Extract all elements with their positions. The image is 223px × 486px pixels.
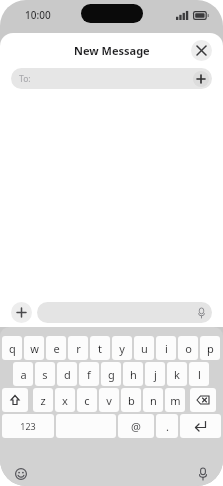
button[interactable]: l bbox=[189, 362, 209, 386]
button[interactable]: Voice input bbox=[194, 465, 211, 482]
staticText: t bbox=[98, 341, 102, 356]
button[interactable]: Shift bbox=[2, 388, 28, 412]
button[interactable]: y bbox=[112, 336, 132, 360]
staticText: g bbox=[108, 367, 115, 382]
staticText: f bbox=[87, 367, 91, 382]
staticText: i bbox=[165, 341, 168, 356]
button[interactable]: @ bbox=[118, 414, 154, 438]
staticText: v bbox=[106, 393, 112, 408]
button[interactable]: a bbox=[13, 362, 33, 386]
staticText: a bbox=[20, 367, 27, 382]
staticText: o bbox=[185, 341, 192, 356]
staticText: w bbox=[30, 341, 39, 356]
button[interactable]: n bbox=[143, 388, 163, 412]
button[interactable]: Add contact bbox=[193, 71, 209, 87]
button[interactable]: x bbox=[55, 388, 75, 412]
button[interactable]: p bbox=[200, 336, 220, 360]
staticText: r bbox=[76, 341, 81, 356]
staticText: s bbox=[42, 367, 48, 382]
staticText: b bbox=[128, 393, 135, 408]
button[interactable]: t bbox=[90, 336, 110, 360]
staticText: p bbox=[207, 341, 214, 356]
staticText: New Message bbox=[74, 43, 150, 58]
button[interactable]: m bbox=[165, 388, 185, 412]
staticText: l bbox=[198, 367, 201, 382]
staticText: 123 bbox=[20, 420, 36, 432]
button[interactable]: g bbox=[101, 362, 121, 386]
button[interactable]: o bbox=[178, 336, 198, 360]
button[interactable]: w bbox=[24, 336, 44, 360]
staticText: @ bbox=[131, 419, 141, 434]
button[interactable]: 123 bbox=[2, 414, 54, 438]
button[interactable]: c bbox=[77, 388, 97, 412]
button[interactable]: i bbox=[156, 336, 176, 360]
button[interactable] bbox=[37, 302, 212, 323]
button[interactable]: Emoji bbox=[12, 465, 29, 482]
button[interactable]: j bbox=[145, 362, 165, 386]
button[interactable]: q bbox=[2, 336, 22, 360]
button[interactable]: . bbox=[156, 414, 178, 438]
staticText: c bbox=[84, 393, 90, 408]
staticText: x bbox=[62, 393, 68, 408]
button[interactable]: b bbox=[121, 388, 141, 412]
staticText: d bbox=[64, 367, 71, 382]
button[interactable]: e bbox=[46, 336, 66, 360]
staticText: z bbox=[40, 393, 46, 408]
button[interactable]: Backspace bbox=[190, 388, 216, 412]
staticText: m bbox=[170, 393, 181, 408]
button[interactable]: Close bbox=[191, 40, 212, 61]
button[interactable]: Add attachment bbox=[11, 302, 32, 323]
staticText: . bbox=[166, 419, 169, 434]
staticText: q bbox=[9, 341, 16, 356]
staticText: n bbox=[150, 393, 157, 408]
button[interactable]: d bbox=[57, 362, 77, 386]
button[interactable]: Enter bbox=[180, 414, 221, 438]
staticText: h bbox=[130, 367, 137, 382]
button[interactable]: h bbox=[123, 362, 143, 386]
staticText: j bbox=[154, 367, 157, 382]
button[interactable]: r bbox=[68, 336, 88, 360]
staticText: u bbox=[141, 341, 148, 356]
staticText: e bbox=[53, 341, 60, 356]
button[interactable]: f bbox=[79, 362, 99, 386]
staticText: 10:00 bbox=[25, 8, 51, 22]
staticText: y bbox=[119, 341, 125, 356]
button[interactable]: z bbox=[33, 388, 53, 412]
staticText: To: bbox=[19, 73, 31, 85]
button[interactable]: v bbox=[99, 388, 119, 412]
button[interactable]: u bbox=[134, 336, 154, 360]
button[interactable]: To: bbox=[11, 68, 212, 89]
staticText: k bbox=[174, 367, 180, 382]
button[interactable]: s bbox=[35, 362, 55, 386]
button[interactable]: k bbox=[167, 362, 187, 386]
